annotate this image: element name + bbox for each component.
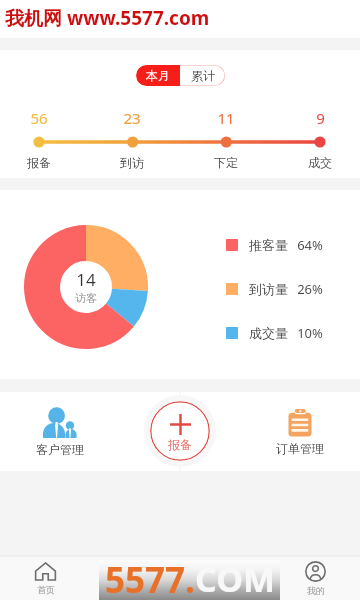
- button[interactable]: 客户: [180, 556, 270, 600]
- staticText: 报备: [27, 155, 51, 170]
- staticText: 成交量: [249, 325, 288, 341]
- staticText: 报备: [168, 437, 192, 452]
- staticText: 64%: [297, 236, 323, 254]
- staticText: 我机网 www.5577.com: [5, 5, 210, 31]
- button[interactable]: 首页: [0, 556, 90, 600]
- staticText: 成交: [308, 155, 332, 170]
- other: 报表: [126, 561, 145, 581]
- staticText: 下定: [214, 155, 238, 170]
- staticText: 客户: [216, 584, 234, 595]
- staticText: 累计: [191, 68, 215, 83]
- other: 我的: [305, 561, 326, 582]
- staticText: 23: [123, 108, 141, 128]
- other: 订单管理: [288, 409, 312, 437]
- button[interactable]: 本月: [136, 65, 180, 86]
- button[interactable]: 累计: [180, 65, 225, 86]
- button[interactable]: 订单管理: [240, 392, 360, 471]
- button[interactable]: 我的: [270, 556, 360, 600]
- staticText: 客户管理: [36, 442, 84, 457]
- staticText: 到访: [120, 155, 144, 170]
- other: 客户管理: [43, 409, 77, 438]
- other: 首页: [35, 562, 56, 581]
- button[interactable]: 报表: [90, 556, 180, 600]
- staticText: 56: [30, 108, 48, 128]
- staticText: 报表: [127, 584, 145, 595]
- staticText: 访客: [75, 291, 97, 305]
- staticText: 订单管理: [276, 441, 324, 456]
- staticText: COM: [195, 556, 276, 596]
- button[interactable]: 客户管理: [0, 392, 120, 471]
- staticText: 9: [316, 108, 325, 128]
- button[interactable]: 报备: [150, 401, 210, 461]
- staticText: 10%: [297, 324, 323, 342]
- staticText: 首页: [37, 584, 55, 595]
- staticText: 11: [217, 108, 235, 128]
- staticText: 推客量: [249, 237, 288, 253]
- staticText: 26%: [297, 280, 323, 298]
- staticText: 到访量: [249, 281, 288, 297]
- other: 客户: [215, 561, 235, 581]
- staticText: 14: [76, 268, 96, 291]
- staticText: 本月: [146, 68, 170, 83]
- staticText: 我的: [307, 585, 325, 596]
- staticText: 5577.: [105, 556, 195, 596]
